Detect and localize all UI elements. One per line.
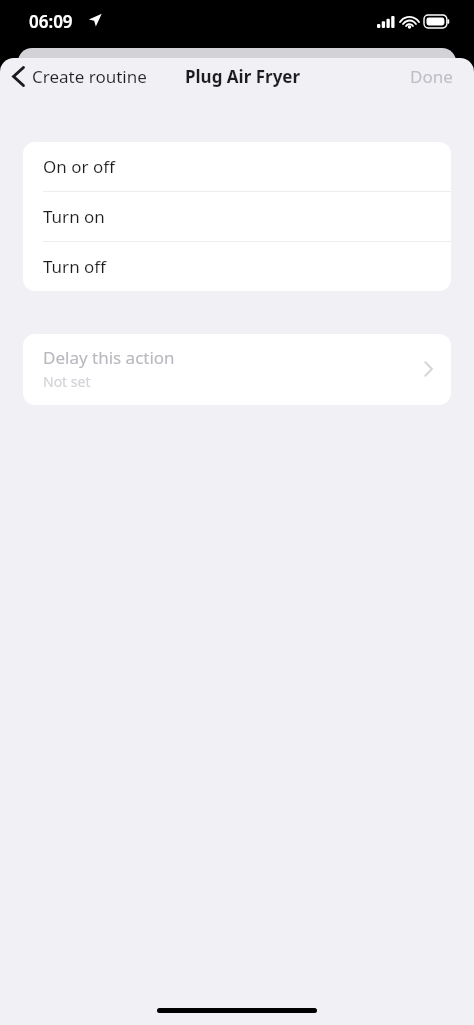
button[interactable]: Turn on (23, 192, 451, 241)
button[interactable]: Delay this action (23, 334, 451, 405)
button[interactable]: Create routine (0, 61, 155, 92)
staticText: 06:09 (29, 10, 73, 33)
staticText: Done (410, 65, 453, 88)
button[interactable]: Done (389, 60, 474, 93)
staticText: Turn on (43, 205, 105, 228)
staticText: Delay this action (43, 346, 175, 369)
other: Open delay settings (424, 361, 433, 377)
staticText: Create routine (32, 65, 147, 88)
staticText: Plug Air Fryer (185, 65, 301, 88)
staticText: Turn off (43, 255, 107, 278)
button[interactable]: Turn off (23, 242, 451, 291)
staticText: Not set (43, 372, 91, 391)
staticText: On or off (43, 155, 115, 178)
button[interactable]: On or off (23, 142, 451, 191)
